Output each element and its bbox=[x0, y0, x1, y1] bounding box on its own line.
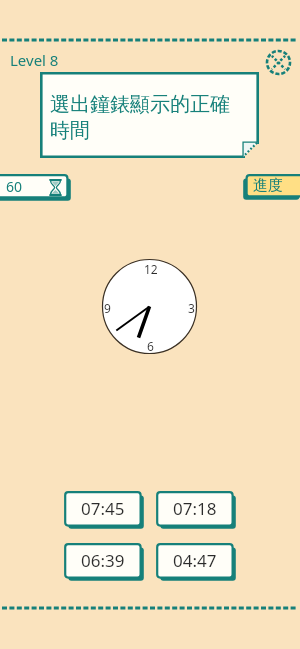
button[interactable]: 04:47 bbox=[156, 543, 237, 582]
staticText: 04:47 bbox=[173, 549, 217, 572]
staticText: 12 bbox=[144, 261, 158, 277]
button[interactable]: 06:39 bbox=[64, 543, 145, 582]
staticText: Level 8 bbox=[10, 50, 59, 70]
button[interactable]: Close bbox=[265, 49, 292, 76]
button[interactable]: 07:18 bbox=[156, 491, 237, 530]
staticText: 9 bbox=[104, 300, 111, 316]
button[interactable]: 07:45 bbox=[64, 491, 145, 530]
staticText: 60 bbox=[6, 177, 23, 196]
staticText: 進度 bbox=[253, 176, 283, 195]
staticText: 6 bbox=[147, 338, 154, 354]
staticText: 07:45 bbox=[81, 497, 125, 520]
staticText: 07:18 bbox=[173, 497, 217, 520]
staticText: 3 bbox=[188, 300, 195, 316]
staticText: 選出鐘錶顯示的正確時間 bbox=[50, 92, 236, 143]
staticText: 06:39 bbox=[81, 549, 125, 572]
